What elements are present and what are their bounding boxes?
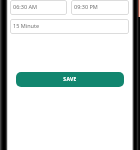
button[interactable]: 06:30 AM [10,0,67,15]
staticText: SAVE [63,76,77,83]
button[interactable]: 15 Minute [10,19,129,34]
staticText: 06:30 AM [13,3,37,10]
staticText: 09:30 PM [74,3,98,10]
staticText: 15 Minute [13,22,40,29]
button[interactable]: SAVE [16,72,124,87]
button[interactable]: 09:30 PM [71,0,129,15]
